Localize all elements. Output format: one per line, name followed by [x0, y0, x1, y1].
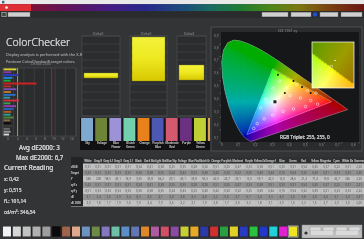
staticText: 0,9 — [214, 34, 219, 38]
button[interactable]: Colour patch 6 — [48, 226, 58, 237]
staticText: 4,5 — [147, 195, 152, 199]
staticText: 14 — [70, 137, 74, 141]
staticText: 1,6 — [290, 201, 295, 205]
staticText: 0,33 — [115, 189, 121, 193]
button[interactable]: Colour patch 17 — [158, 226, 168, 237]
button[interactable]: Measurement controls — [302, 225, 362, 238]
staticText: 2,22 — [356, 189, 362, 193]
staticText: 6,7 — [246, 195, 251, 199]
button[interactable]: Target patch 6 — [151, 118, 165, 151]
button[interactable]: Colour patch 28 — [268, 226, 278, 237]
button[interactable]: Colour patch 4 — [29, 226, 38, 237]
staticText: 0,54 — [290, 171, 296, 175]
button[interactable]: Colour patch 12 — [108, 226, 118, 237]
button[interactable]: Colour patch 10 — [88, 226, 98, 237]
staticText: 0,7 — [214, 58, 219, 62]
staticText: 0,25 — [224, 165, 230, 169]
button[interactable]: Target patch 2 — [95, 118, 109, 151]
button[interactable]: Open workflow — [2, 12, 7, 17]
button[interactable]: Pattern source — [291, 12, 311, 17]
button[interactable]: Workflow selector — [8, 12, 30, 17]
button[interactable]: Reference — [111, 4, 148, 11]
button[interactable]: Target patch 5 — [137, 118, 151, 151]
staticText: 0,35 — [180, 165, 186, 169]
staticText: 0,35 — [158, 171, 164, 175]
staticText: 0,32 — [301, 189, 307, 193]
button[interactable]: Colour patch 8 — [68, 226, 78, 237]
staticText: 28,6 — [290, 177, 296, 181]
button[interactable]: Meter settings — [262, 12, 288, 17]
staticText: Orange — [139, 141, 150, 145]
button[interactable]: Colour patch 14 — [128, 226, 138, 237]
button[interactable]: Workflow — [74, 4, 111, 11]
staticText: 35,8 — [147, 177, 153, 181]
staticText: 0,51 — [268, 165, 274, 169]
button[interactable]: Colour patch 26 — [248, 226, 258, 237]
button[interactable]: Colour patch 7 — [58, 226, 68, 237]
button[interactable]: Colour patch 29 — [278, 226, 288, 237]
staticText: Dark Skin — [144, 159, 155, 163]
staticText: 0,49 — [257, 189, 263, 193]
button[interactable]: Target patch 9 — [193, 118, 207, 151]
button[interactable]: Colour patch 2 — [11, 226, 20, 237]
staticText: 0,47 — [235, 165, 241, 169]
button[interactable]: Colour patch 18 — [168, 226, 178, 237]
staticText: Y — [71, 177, 73, 181]
staticText: 8 — [44, 137, 46, 141]
staticText: 0,33 — [125, 171, 131, 175]
button[interactable]: Colour patch 20 — [188, 226, 198, 237]
staticText: 3,3 — [191, 195, 196, 199]
staticText: 0,33 — [115, 171, 121, 175]
button[interactable]: Colour patch 30 — [288, 226, 298, 237]
button[interactable]: Display Control — [148, 4, 184, 11]
button[interactable]: Colour patch 9 — [78, 226, 88, 237]
staticText: 0,25 — [169, 183, 175, 187]
button[interactable]: Colour space — [341, 12, 362, 17]
staticText: 64,2 — [158, 177, 164, 181]
staticText: 0,33 — [95, 189, 101, 193]
button[interactable]: Help — [328, 4, 364, 11]
staticText: Purplish Blue — [221, 159, 232, 163]
button[interactable]: Colour patch 3 — [20, 226, 29, 237]
button[interactable]: Colour patch 1 — [2, 226, 11, 237]
button[interactable]: Analysis — [220, 4, 256, 11]
staticText: 0,45 — [312, 183, 318, 187]
button[interactable]: Colour patch 21 — [198, 226, 208, 237]
staticText: 2,0 — [235, 201, 240, 205]
button[interactable]: Colour patch 15 — [138, 226, 148, 237]
staticText: 59,1 — [257, 177, 263, 181]
staticText: 0,25 — [169, 165, 175, 169]
button[interactable]: Colour patch 19 — [178, 226, 188, 237]
button[interactable]: Measure — [184, 4, 220, 11]
button[interactable]: Connect meter — [313, 12, 318, 17]
button[interactable]: Colour patch 22 — [208, 226, 218, 237]
button[interactable]: Colour patch 27 — [258, 226, 268, 237]
button[interactable]: Target patch 8 — [179, 118, 193, 151]
staticText: 0,31 — [290, 183, 296, 187]
button[interactable]: Colour patch 16 — [148, 226, 158, 237]
staticText: 1,9 — [158, 201, 163, 205]
staticText: 0,44 — [268, 189, 274, 193]
button[interactable]: Colour patch 5 — [38, 226, 48, 237]
staticText: 2,20 — [356, 201, 362, 205]
staticText: 42,0 — [213, 177, 219, 181]
staticText: 2,9 — [116, 195, 121, 199]
button[interactable]: Colour patch 13 — [118, 226, 128, 237]
button[interactable]: Colour patch 24 — [228, 226, 238, 237]
button[interactable]: Calibrate — [256, 4, 292, 11]
button[interactable]: Colour patch 11 — [98, 226, 108, 237]
button[interactable]: Settings — [37, 4, 74, 11]
button[interactable]: Colour patch 23 — [218, 226, 228, 237]
button[interactable]: Target patch 3 — [109, 118, 123, 151]
button[interactable]: Target patch 7 — [165, 118, 179, 151]
button[interactable]: Report — [292, 4, 328, 11]
button[interactable]: Display selector — [320, 12, 338, 17]
button[interactable]: Target patch 1 — [80, 118, 95, 151]
staticText: 0,38 — [147, 189, 153, 193]
staticText: 1,8 — [96, 201, 101, 205]
button[interactable]: Colour patch 25 — [238, 226, 248, 237]
button[interactable]: Calman — [0, 4, 37, 11]
staticText: 0,54 — [301, 165, 307, 169]
button[interactable]: Target patch 4 — [123, 118, 137, 151]
